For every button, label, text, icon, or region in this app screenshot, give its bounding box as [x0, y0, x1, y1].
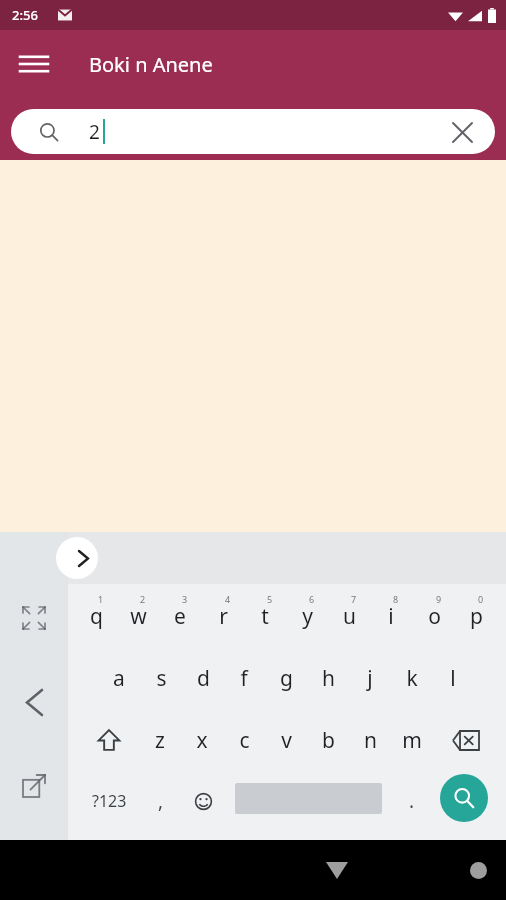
staticText: h [322, 664, 335, 693]
button[interactable]: Home [225, 840, 506, 900]
button[interactable]: f [223, 653, 265, 703]
staticText: 3 [182, 593, 188, 605]
button[interactable]: r [202, 591, 244, 641]
staticText: n [364, 726, 377, 755]
staticText: v [281, 726, 292, 755]
button[interactable]: Resize keyboard [10, 594, 58, 642]
staticText: t [261, 602, 269, 631]
button[interactable]: Floating keyboard [10, 762, 58, 810]
staticText: 1 [98, 593, 104, 605]
button[interactable]: u [328, 591, 370, 641]
staticText: 4 [225, 593, 231, 605]
button[interactable]: Shift [87, 715, 131, 765]
button[interactable]: Emoji [183, 777, 223, 825]
staticText: 7 [351, 593, 357, 605]
button[interactable]: j [349, 653, 391, 703]
button[interactable]: v [265, 715, 307, 765]
staticText: w [130, 602, 147, 631]
button[interactable]: n [349, 715, 391, 765]
staticText: . [409, 788, 415, 814]
button[interactable]: 2 [11, 109, 495, 154]
button[interactable]: Clear search [441, 111, 483, 153]
button[interactable]: ?123 [78, 777, 140, 825]
button[interactable]: x [181, 715, 223, 765]
staticText: d [197, 664, 210, 693]
button[interactable]: p [455, 591, 497, 641]
button[interactable]: Open navigation menu [8, 38, 60, 90]
button[interactable]: e [159, 591, 201, 641]
staticText: 9 [436, 593, 442, 605]
staticText: a [113, 664, 125, 693]
staticText: , [158, 788, 164, 814]
button[interactable]: s [140, 653, 182, 703]
button[interactable]: q [75, 591, 117, 641]
button[interactable]: c [223, 715, 265, 765]
staticText: m [402, 726, 422, 755]
button[interactable]: b [307, 715, 349, 765]
button[interactable]: m [391, 715, 433, 765]
button[interactable]: Expand toolbar [56, 537, 98, 579]
button[interactable]: z [139, 715, 181, 765]
button[interactable]: d [182, 653, 224, 703]
button[interactable]: o [413, 591, 455, 641]
staticText: z [155, 726, 165, 755]
button[interactable]: g [265, 653, 307, 703]
staticText: f [240, 664, 248, 693]
button[interactable]: w [117, 591, 159, 641]
button[interactable]: Back [84, 840, 506, 900]
button[interactable]: k [391, 653, 433, 703]
staticText: j [367, 664, 373, 693]
staticText: r [219, 602, 228, 631]
staticText: k [406, 664, 418, 693]
staticText: y [302, 602, 313, 631]
button[interactable]: Delete [444, 715, 488, 765]
button[interactable]: l [432, 653, 474, 703]
staticText: c [239, 726, 250, 755]
button[interactable]: . [393, 777, 431, 825]
staticText: p [470, 602, 483, 631]
button[interactable]: Back [10, 678, 58, 726]
staticText: 0 [478, 593, 484, 605]
staticText: 8 [393, 593, 399, 605]
staticText: x [196, 726, 208, 755]
staticText: 6 [309, 593, 315, 605]
button[interactable]: Search [440, 774, 488, 822]
staticText: i [388, 602, 394, 631]
button[interactable]: Switch keyboard [438, 840, 506, 900]
staticText: o [428, 602, 441, 631]
button[interactable]: y [286, 591, 328, 641]
staticText: q [90, 602, 103, 631]
button[interactable]: Recent apps [364, 840, 506, 900]
button[interactable]: h [307, 653, 349, 703]
staticText: 5 [267, 593, 273, 605]
button[interactable]: , [142, 777, 180, 825]
staticText: 2:56 [12, 6, 38, 24]
staticText: l [450, 664, 456, 693]
staticText: u [343, 602, 356, 631]
staticText: Boki n Anene [89, 51, 213, 78]
button[interactable]: i [370, 591, 412, 641]
staticText: 2 [89, 119, 100, 145]
staticText: ?123 [92, 790, 127, 812]
button[interactable]: t [244, 591, 286, 641]
staticText: g [280, 664, 293, 693]
button[interactable]: a [98, 653, 140, 703]
staticText: e [174, 602, 186, 631]
staticText: s [156, 664, 167, 693]
staticText: 2 [140, 593, 146, 605]
staticText: b [322, 726, 335, 755]
